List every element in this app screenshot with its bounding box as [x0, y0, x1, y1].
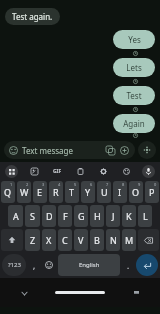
staticText: . [127, 260, 130, 271]
button[interactable]: Lets [113, 58, 155, 77]
staticText: X [46, 234, 52, 246]
staticText: 3 [42, 182, 45, 187]
button[interactable]: L [138, 205, 152, 227]
button[interactable]: N [106, 229, 120, 251]
button[interactable]: A [8, 205, 23, 227]
button[interactable]: Emoji [42, 254, 56, 276]
button[interactable]: Stickers [104, 144, 116, 156]
button[interactable]: Comma [28, 254, 40, 276]
staticText: 9 [138, 182, 141, 187]
button[interactable]: Keyboard menu [5, 165, 18, 178]
button[interactable]: Recents [130, 287, 142, 299]
button[interactable]: Sticker [27, 164, 41, 178]
button[interactable]: D [42, 205, 56, 227]
button[interactable]: Clipboard [73, 164, 87, 178]
button[interactable]: H [90, 205, 104, 227]
staticText: S [30, 210, 35, 222]
staticText: 0 [154, 182, 157, 187]
button[interactable]: X [42, 229, 56, 251]
button[interactable]: J [106, 205, 120, 227]
staticText: M [125, 234, 134, 246]
button[interactable]: K [122, 205, 136, 227]
staticText: GIF [53, 168, 62, 175]
button[interactable]: O [129, 181, 143, 203]
button[interactable]: Themes [119, 164, 133, 178]
button[interactable]: Attach [118, 144, 130, 156]
button[interactable]: Voice input [142, 165, 155, 178]
staticText: 2 [26, 182, 29, 187]
staticText: E [37, 186, 43, 198]
button[interactable]: B [90, 229, 104, 251]
button[interactable]: Q [1, 181, 15, 203]
staticText: 4 [58, 182, 61, 187]
staticText: J [112, 210, 115, 222]
staticText: 5 [74, 182, 77, 187]
staticText: R [53, 186, 59, 198]
button[interactable]: R [49, 181, 63, 203]
staticText: F [63, 210, 68, 222]
staticText: K [126, 210, 132, 222]
staticText: O [132, 186, 140, 198]
staticText: P [149, 186, 155, 198]
staticText: 6 [90, 182, 93, 187]
staticText: Test [126, 90, 142, 101]
button[interactable]: V [74, 229, 88, 251]
staticText: V [78, 234, 84, 246]
staticText: Y [85, 186, 91, 198]
button[interactable]: U [97, 181, 111, 203]
staticText: 1 [10, 182, 13, 187]
staticText: A [13, 210, 19, 222]
staticText: ?123 [8, 261, 21, 269]
staticText: W [20, 186, 29, 198]
staticText: C [62, 234, 68, 246]
staticText: Text message [22, 145, 104, 156]
button[interactable]: F [58, 205, 72, 227]
staticText: Lets [126, 62, 142, 73]
button[interactable]: M [122, 229, 136, 251]
staticText: Z [30, 234, 36, 246]
staticText: L [143, 210, 148, 222]
button[interactable]: Test [113, 86, 155, 105]
button[interactable]: Z [25, 229, 40, 251]
staticText: U [101, 186, 108, 198]
button[interactable]: Y [81, 181, 95, 203]
staticText: Test again. [12, 11, 53, 22]
button[interactable]: Settings [96, 164, 110, 178]
button[interactable]: E [33, 181, 47, 203]
button[interactable]: English [58, 254, 120, 276]
staticText: English [79, 261, 100, 269]
staticText: 7 [106, 182, 109, 187]
button[interactable]: Back [18, 287, 30, 299]
staticText: N [110, 234, 117, 246]
button[interactable]: ?123 [2, 254, 26, 276]
button[interactable]: T [65, 181, 79, 203]
button[interactable]: Period [122, 254, 134, 276]
button[interactable]: Apps [138, 141, 156, 159]
staticText: Yes [128, 34, 141, 45]
button[interactable]: Backspace [138, 229, 159, 251]
button[interactable]: Text message [4, 141, 135, 159]
button[interactable]: Enter [136, 254, 158, 276]
button[interactable]: Test again. [5, 8, 60, 25]
staticText: D [46, 210, 53, 222]
button[interactable]: G [74, 205, 88, 227]
staticText: G [78, 210, 85, 222]
button[interactable]: GIF [50, 164, 64, 178]
button[interactable]: Again [113, 114, 155, 133]
staticText: T [69, 186, 75, 198]
button[interactable]: C [58, 229, 72, 251]
button[interactable]: I [113, 181, 127, 203]
button[interactable]: P [145, 181, 159, 203]
button[interactable]: S [25, 205, 40, 227]
staticText: Q [4, 186, 12, 198]
button[interactable]: Yes [113, 30, 155, 49]
staticText: Again [123, 118, 145, 129]
staticText: 8 [122, 182, 125, 187]
staticText: B [94, 234, 100, 246]
staticText: , [33, 260, 36, 271]
button[interactable]: Shift [1, 229, 23, 251]
staticText: H [94, 210, 101, 222]
button[interactable]: W [17, 181, 31, 203]
staticText: I [118, 186, 122, 198]
